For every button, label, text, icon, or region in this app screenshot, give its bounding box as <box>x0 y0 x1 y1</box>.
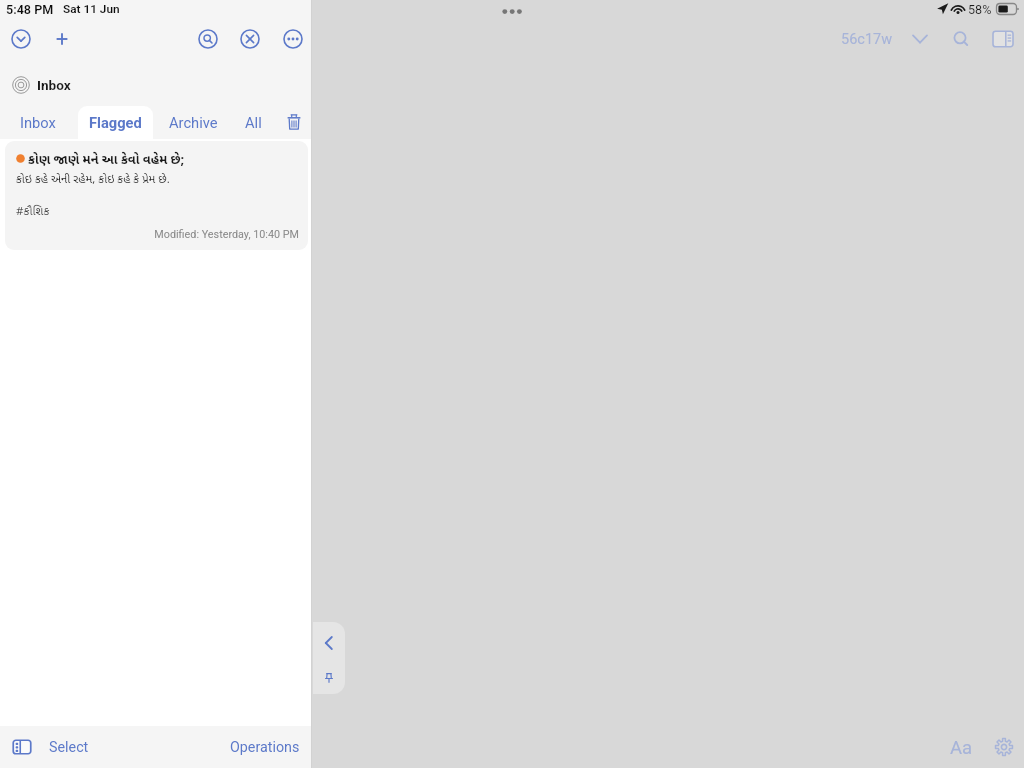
button[interactable]: Close <box>238 27 262 51</box>
staticText: Sat 11 Jun <box>63 2 120 16</box>
staticText: Aa <box>950 737 973 759</box>
button[interactable]: Settings <box>992 735 1016 759</box>
button[interactable]: Toggle sidebar <box>991 27 1015 51</box>
button[interactable]: Pin <box>313 666 345 690</box>
staticText: #કૌશિક <box>16 205 50 220</box>
staticText: 56c17w <box>841 31 893 48</box>
staticText: 58% <box>968 2 992 17</box>
button[interactable]: Flagged <box>89 110 142 134</box>
button[interactable]: Collapse <box>9 27 33 51</box>
staticText: કોણ જાણે મને આ કેવો વહેમ છે; <box>28 153 185 170</box>
button[interactable]: Search <box>196 27 220 51</box>
button[interactable]: Trash <box>282 110 306 134</box>
button[interactable]: Archive <box>169 110 218 134</box>
staticText: Select <box>49 739 89 756</box>
staticText: All <box>245 114 262 131</box>
button[interactable]: New note <box>50 27 74 51</box>
staticText: Flagged <box>89 114 142 131</box>
staticText: Inbox <box>37 77 71 93</box>
button[interactable]: Inbox <box>0 70 312 100</box>
staticText: Operations <box>230 739 300 756</box>
button[interactable]: Text size <box>950 737 973 759</box>
button[interactable]: Select <box>12 726 89 768</box>
staticText: Archive <box>169 114 218 131</box>
button[interactable]: Expand <box>908 27 932 51</box>
button[interactable]: Back <box>313 628 345 658</box>
staticText: કોઇ કહે એની રહેમ, કોઇ કહે કે પ્રેમ છે. <box>16 173 170 188</box>
button[interactable]: Operations <box>230 726 300 768</box>
button[interactable]: More options <box>281 27 305 51</box>
staticText: Inbox <box>20 114 56 131</box>
button[interactable]: Inbox <box>20 110 56 134</box>
button[interactable]: All <box>245 110 262 134</box>
staticText: 5:48 PM <box>6 2 54 17</box>
staticText: Modified: Yesterday, 10:40 PM <box>5 228 299 241</box>
button[interactable]: કોણ જાણે મને આ કેવો વહેમ છે; <box>5 141 308 250</box>
button[interactable]: Search <box>949 27 973 51</box>
